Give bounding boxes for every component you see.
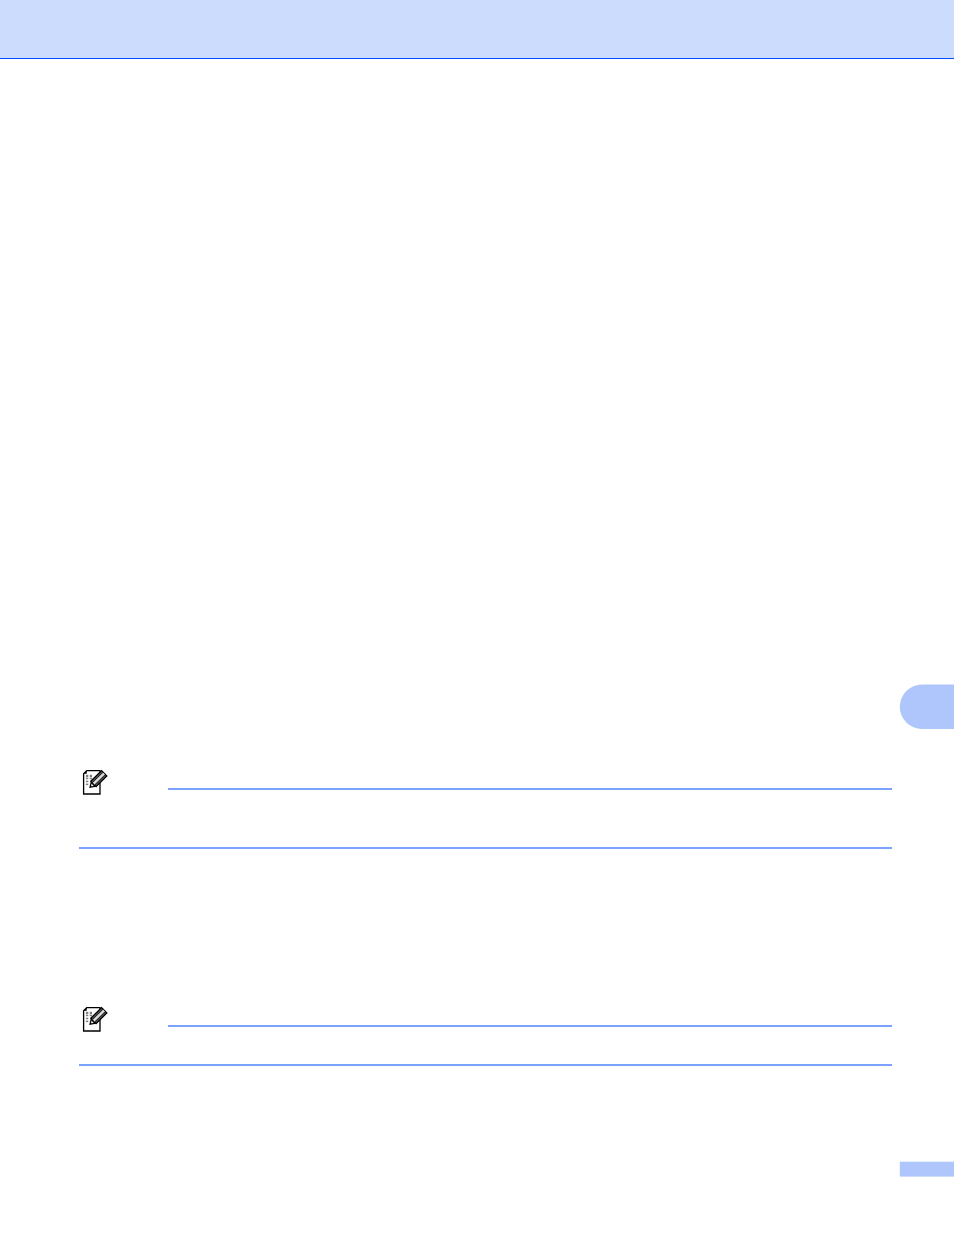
button[interactable]: Next chapter tab bbox=[900, 1162, 954, 1177]
button[interactable]: Note bbox=[78, 1003, 892, 1067]
button[interactable]: Chapter index tab bbox=[900, 685, 954, 729]
button[interactable]: Note bbox=[78, 766, 892, 850]
